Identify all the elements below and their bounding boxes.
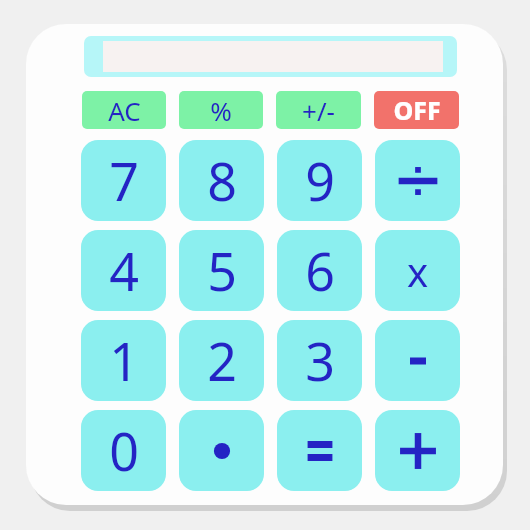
button[interactable]: 7 xyxy=(81,140,166,221)
staticText: 6 xyxy=(305,235,335,306)
staticText: 3 xyxy=(305,325,335,396)
button[interactable]: 5 xyxy=(179,230,264,311)
button[interactable]: 3 xyxy=(277,320,362,401)
button[interactable]: 4 xyxy=(81,230,166,311)
button[interactable]: +/- xyxy=(276,91,361,129)
button[interactable]: 8 xyxy=(179,140,264,221)
staticText: +/- xyxy=(302,93,335,128)
staticText: 7 xyxy=(109,145,139,216)
staticText: % xyxy=(210,93,232,128)
button[interactable]: % xyxy=(179,91,263,129)
staticText: 5 xyxy=(207,235,237,306)
staticText: OFF xyxy=(393,93,441,127)
staticText: 8 xyxy=(207,145,237,216)
button[interactable]: 6 xyxy=(277,230,362,311)
staticText: 9 xyxy=(305,145,335,216)
staticText: 4 xyxy=(109,235,139,306)
button[interactable]: 9 xyxy=(277,140,362,221)
button[interactable] xyxy=(84,36,457,77)
staticText: AC xyxy=(108,93,141,128)
button[interactable]: 1 xyxy=(81,320,166,401)
button[interactable]: OFF xyxy=(374,91,459,129)
button[interactable]: 2 xyxy=(179,320,264,401)
staticText: x xyxy=(407,244,429,298)
staticText: 0 xyxy=(109,415,139,486)
button[interactable]: Multiply xyxy=(375,230,460,311)
button[interactable]: AC xyxy=(82,91,166,129)
button[interactable]: Decimal point xyxy=(179,410,264,491)
staticText: 1 xyxy=(109,325,139,396)
button[interactable]: Add xyxy=(375,410,460,491)
button[interactable]: Divide xyxy=(375,140,460,221)
button[interactable]: 0 xyxy=(81,410,166,491)
button[interactable]: Equals xyxy=(277,410,362,491)
staticText: 2 xyxy=(207,325,237,396)
button[interactable]: Subtract xyxy=(375,320,460,401)
